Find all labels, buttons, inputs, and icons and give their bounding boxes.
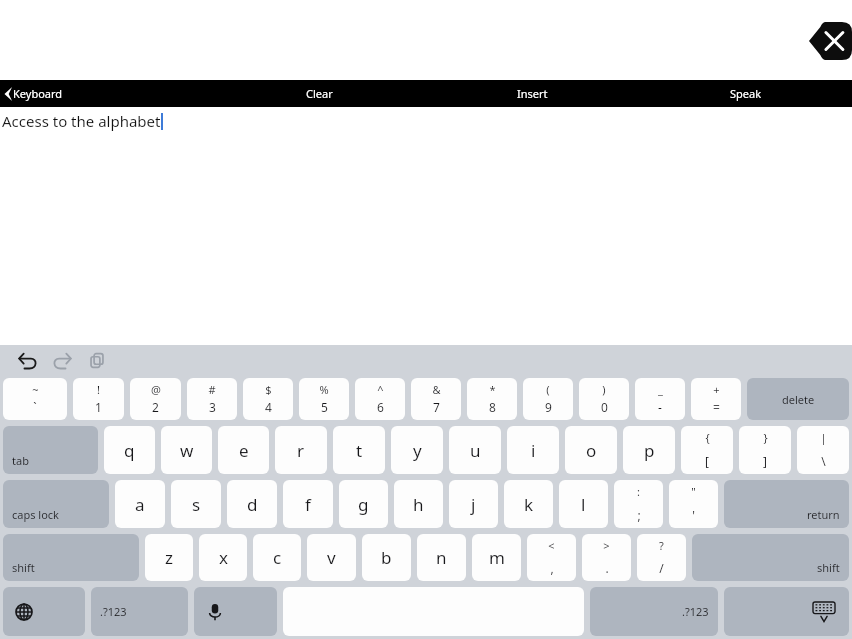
button[interactable]: Insert	[426, 80, 639, 107]
button[interactable]: (	[523, 378, 573, 420]
button[interactable]: ?	[637, 534, 686, 581]
button[interactable]: r	[275, 426, 327, 474]
button[interactable]: _	[635, 378, 685, 420]
staticText: >	[603, 538, 610, 553]
staticText: y	[413, 439, 422, 462]
button[interactable]: shift	[692, 534, 849, 581]
button[interactable]: h	[394, 480, 443, 528]
staticText: &	[432, 382, 441, 397]
button[interactable]: Hide keyboard	[724, 587, 849, 636]
staticText: c	[273, 546, 282, 569]
button[interactable]: n	[417, 534, 466, 581]
staticText: 6	[377, 399, 384, 415]
button[interactable]: a	[115, 480, 165, 528]
staticText: =	[713, 399, 720, 415]
staticText: 3	[209, 399, 216, 415]
button[interactable]: @	[130, 378, 181, 420]
button[interactable]: )	[579, 378, 629, 420]
button[interactable]: Clear	[213, 80, 426, 107]
button[interactable]: ^	[355, 378, 405, 420]
button[interactable]: i	[507, 426, 559, 474]
button[interactable]: Undo	[14, 347, 40, 373]
button[interactable]: Close	[808, 22, 852, 60]
staticText: 7	[433, 399, 440, 415]
button[interactable]: caps lock	[3, 480, 109, 528]
staticText: l	[581, 493, 586, 516]
staticText: shift	[817, 560, 840, 575]
button[interactable]: return	[724, 480, 849, 528]
button[interactable]: &	[411, 378, 461, 420]
staticText: e	[239, 439, 249, 462]
staticText: s	[192, 493, 201, 516]
staticText: delete	[782, 392, 815, 407]
button[interactable]: *	[467, 378, 517, 420]
button[interactable]: {	[681, 426, 733, 474]
staticText: Insert	[517, 86, 548, 101]
button[interactable]: d	[227, 480, 277, 528]
staticText: _	[658, 382, 663, 397]
button[interactable]: l	[559, 480, 608, 528]
button[interactable]: :	[614, 480, 663, 528]
button[interactable]: w	[161, 426, 212, 474]
button[interactable]: !	[73, 378, 124, 420]
button[interactable]: |	[797, 426, 849, 474]
button[interactable]: Change keyboard language	[3, 587, 85, 636]
button[interactable]: "	[669, 480, 718, 528]
button[interactable]: #	[187, 378, 237, 420]
button[interactable]: z	[145, 534, 193, 581]
button[interactable]: tab	[3, 426, 98, 474]
button[interactable]: j	[449, 480, 498, 528]
button[interactable]: b	[362, 534, 411, 581]
staticText: 5	[321, 399, 328, 415]
button[interactable]: .?123	[91, 587, 188, 636]
button[interactable]: k	[504, 480, 553, 528]
staticText: `	[33, 399, 37, 415]
staticText: )	[602, 382, 606, 397]
staticText: |	[820, 430, 827, 445]
button[interactable]: x	[199, 534, 247, 581]
button[interactable]: }	[739, 426, 791, 474]
staticText: (	[546, 382, 550, 397]
button[interactable]: f	[283, 480, 333, 528]
button[interactable]: m	[472, 534, 521, 581]
staticText: u	[470, 439, 481, 462]
button[interactable]: ~	[3, 378, 67, 420]
button[interactable]: o	[565, 426, 617, 474]
staticText: p	[644, 439, 655, 462]
button[interactable]: shift	[3, 534, 139, 581]
button[interactable]: >	[582, 534, 631, 581]
button[interactable]: p	[623, 426, 675, 474]
button[interactable]: $	[243, 378, 293, 420]
button[interactable]: .?123	[590, 587, 718, 636]
staticText: .?123	[100, 604, 127, 619]
button[interactable]: delete	[747, 378, 849, 420]
button[interactable]: <	[527, 534, 576, 581]
button[interactable]: q	[104, 426, 155, 474]
staticText: return	[807, 507, 840, 522]
staticText: 8	[489, 399, 496, 415]
button[interactable]: v	[307, 534, 356, 581]
staticText: -	[658, 399, 662, 415]
staticText: ,	[550, 560, 554, 576]
button[interactable]: Redo	[49, 347, 75, 373]
button[interactable]: %	[299, 378, 349, 420]
button[interactable]: y	[391, 426, 443, 474]
button[interactable]: e	[218, 426, 269, 474]
staticText: {	[705, 430, 710, 445]
button[interactable]: s	[171, 480, 221, 528]
staticText: $	[265, 382, 272, 397]
staticText: ;	[637, 507, 641, 523]
button[interactable]: Speak	[639, 80, 852, 107]
button[interactable]: Voice input	[194, 587, 277, 636]
button[interactable]: Keyboard	[0, 80, 213, 107]
staticText: 1	[95, 399, 102, 415]
button[interactable]: c	[253, 534, 301, 581]
staticText: o	[586, 439, 597, 462]
button[interactable]: Paste	[84, 347, 110, 373]
button[interactable]: +	[691, 378, 741, 420]
button[interactable]: g	[339, 480, 388, 528]
button[interactable]: u	[449, 426, 501, 474]
button[interactable]: t	[333, 426, 385, 474]
staticText: [	[705, 453, 709, 469]
